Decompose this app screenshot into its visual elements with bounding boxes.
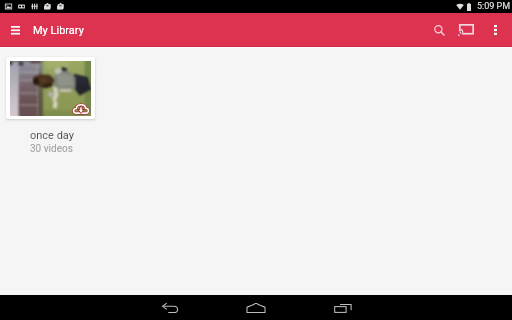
staticText: 30 videos [30, 143, 73, 155]
button[interactable]: once day [6, 57, 95, 155]
button[interactable]: Home [221, 295, 291, 320]
staticText: 5:09 PM [477, 1, 511, 12]
button[interactable]: Cast screen [450, 14, 481, 46]
button[interactable]: Search [420, 14, 450, 46]
button[interactable]: Back [135, 295, 205, 320]
staticText: My Library [33, 24, 84, 37]
button[interactable]: More options [481, 14, 512, 46]
staticText: once day [30, 129, 74, 142]
button[interactable]: Navigation menu [0, 15, 30, 45]
button[interactable]: Recent apps [308, 295, 378, 320]
